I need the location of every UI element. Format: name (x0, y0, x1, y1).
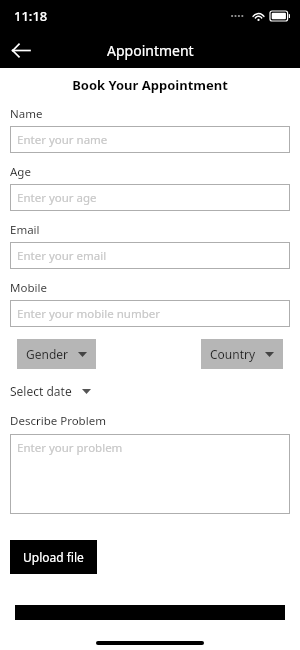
button[interactable]: Enter your email (10, 242, 290, 269)
staticText: Country (210, 346, 256, 362)
staticText: Upload file (23, 549, 84, 565)
staticText: Enter your problem (17, 440, 123, 456)
button[interactable]: Enter your age (10, 184, 290, 211)
button[interactable]: Upload file (10, 540, 97, 574)
button[interactable]: Enter your mobile number (10, 300, 290, 327)
staticText: Appointment (107, 41, 194, 60)
staticText: Select date (10, 383, 72, 399)
button[interactable]: Gender (17, 339, 96, 369)
staticText: Describe Problem (10, 413, 106, 429)
staticText: Gender (26, 346, 69, 362)
staticText: 11:18 (14, 7, 48, 25)
staticText: Enter your mobile number (17, 306, 161, 322)
button[interactable]: Enter your name (10, 126, 290, 153)
staticText: Enter your name (17, 132, 108, 148)
staticText: Name (10, 106, 43, 122)
staticText: Email (10, 222, 40, 238)
staticText: Enter your email (17, 248, 107, 264)
staticText: Book Your Appointment (10, 76, 290, 94)
button[interactable]: Enter your problem (10, 434, 290, 514)
staticText: Age (10, 164, 31, 180)
staticText: Enter your age (17, 190, 97, 206)
button[interactable]: Select date (10, 383, 91, 399)
button[interactable]: Back (0, 32, 40, 68)
button[interactable]: Country (201, 339, 283, 369)
staticText: Mobile (10, 280, 47, 296)
